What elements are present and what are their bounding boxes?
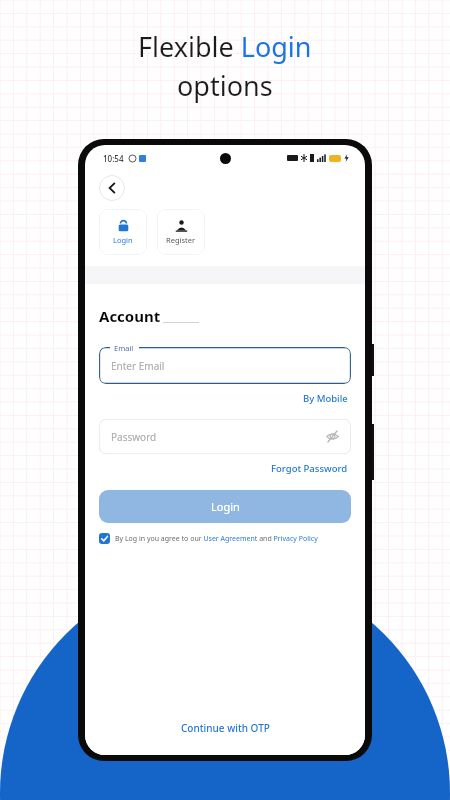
button[interactable]: Back xyxy=(99,175,125,201)
button[interactable]: Register xyxy=(157,209,205,255)
button[interactable]: By Mobile xyxy=(301,390,350,407)
staticText: Login xyxy=(211,499,240,514)
button[interactable]: Forgot Password xyxy=(269,460,350,477)
staticText: options xyxy=(177,67,273,104)
staticText: Forgot Password xyxy=(271,462,348,475)
button[interactable]: Continue with OTP xyxy=(175,715,276,741)
button[interactable]: Login xyxy=(99,209,147,255)
staticText: Password xyxy=(111,430,157,444)
button[interactable]: Password xyxy=(99,419,351,454)
staticText: Account xyxy=(99,306,161,326)
staticText: Login xyxy=(113,235,133,245)
staticText: Enter Email xyxy=(111,359,165,373)
staticText: By Log in you agree to our User Agreemen… xyxy=(115,534,318,544)
other: Show password xyxy=(326,430,339,443)
button[interactable]: Agree to terms xyxy=(99,533,110,544)
button[interactable]: Enter Email xyxy=(99,347,351,384)
staticText: By Mobile xyxy=(303,392,348,405)
staticText: Email xyxy=(114,343,134,353)
button[interactable]: Login xyxy=(99,490,351,523)
staticText: Register xyxy=(166,235,196,245)
staticText: Flexible Login xyxy=(138,28,312,65)
staticText: 10:54 xyxy=(103,153,124,164)
staticText: Continue with OTP xyxy=(181,721,270,735)
